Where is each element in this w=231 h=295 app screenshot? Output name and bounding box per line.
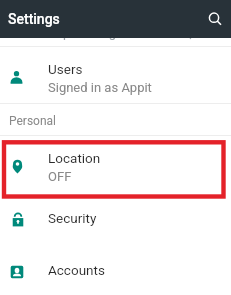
button[interactable]: Users (0, 47, 231, 103)
button[interactable]: Security (0, 192, 231, 244)
staticText: Users (48, 61, 83, 77)
staticText: Security (48, 210, 97, 226)
button[interactable]: Location (0, 136, 231, 192)
staticText: Location (48, 150, 101, 166)
staticText: Settings (8, 11, 60, 27)
button[interactable]: Adaptive brightness is ON, sleep after 3… (0, 0, 231, 46)
button[interactable]: Accounts (0, 244, 231, 295)
button[interactable]: Search (203, 7, 227, 31)
staticText: Adaptive brightness is ON, sleep after 3… (40, 25, 231, 40)
staticText: OFF (48, 169, 72, 184)
staticText: Signed in as Appit (48, 80, 152, 95)
staticText: Personal (9, 114, 57, 128)
staticText: Accounts (48, 262, 105, 278)
